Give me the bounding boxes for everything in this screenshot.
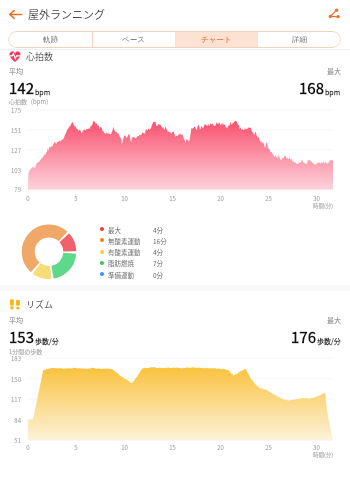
staticText: 歩数/分 xyxy=(35,336,59,346)
staticText: 30 xyxy=(313,194,320,203)
staticText: 153 xyxy=(9,326,34,348)
staticText: リズム xyxy=(26,298,54,311)
staticText: 30 xyxy=(313,443,320,452)
button[interactable]: Back xyxy=(4,3,26,25)
staticText: 0分 xyxy=(153,270,164,279)
staticText: 無酸素運動 xyxy=(108,236,141,245)
staticText: 151 xyxy=(11,126,21,135)
button[interactable]: ペース xyxy=(92,31,175,48)
staticText: 時間(分) xyxy=(313,451,334,459)
staticText: 10 xyxy=(121,443,128,452)
staticText: 176 xyxy=(291,326,316,348)
staticText: 16分 xyxy=(153,236,167,245)
staticText: 歩数/分 xyxy=(317,336,341,346)
staticText: 最大 xyxy=(108,225,121,234)
staticText: 20 xyxy=(217,443,224,452)
button[interactable]: 軌跡 xyxy=(8,31,92,48)
staticText: 詳細 xyxy=(292,35,307,44)
staticText: 平均 xyxy=(9,315,23,325)
button[interactable]: Share xyxy=(325,5,343,23)
staticText: チャート xyxy=(201,35,232,44)
staticText: 有酸素運動 xyxy=(108,247,141,256)
staticText: bpm xyxy=(325,87,341,97)
staticText: 時間(分) xyxy=(313,202,334,210)
staticText: 脂肪燃焼 xyxy=(108,258,134,267)
staticText: 0 xyxy=(26,443,30,452)
staticText: 5 xyxy=(74,194,78,203)
staticText: 117 xyxy=(11,395,21,404)
staticText: 最大 xyxy=(327,315,341,325)
staticText: 79 xyxy=(14,185,21,194)
staticText: 10 xyxy=(121,194,128,203)
staticText: 175 xyxy=(11,106,21,115)
staticText: 屋外ランニング xyxy=(28,6,105,22)
staticText: 15 xyxy=(169,443,176,452)
button[interactable]: チャート xyxy=(175,31,258,48)
staticText: 準備運動 xyxy=(108,270,134,279)
staticText: 軌跡 xyxy=(43,35,58,44)
staticText: 25 xyxy=(265,443,272,452)
staticText: 142 xyxy=(9,77,34,99)
staticText: 最大 xyxy=(327,66,341,76)
staticText: 1分間の歩数 xyxy=(9,347,43,356)
staticText: 20 xyxy=(217,194,224,203)
staticText: 25 xyxy=(265,194,272,203)
staticText: 150 xyxy=(11,375,21,384)
staticText: 7分 xyxy=(153,258,164,267)
staticText: 心拍数（bpm） xyxy=(9,97,52,106)
staticText: 4分 xyxy=(153,247,164,256)
staticText: 127 xyxy=(11,146,21,155)
staticText: 168 xyxy=(299,77,324,99)
staticText: 心拍数 xyxy=(26,50,54,63)
button[interactable]: 詳細 xyxy=(258,31,341,48)
staticText: 183 xyxy=(11,354,21,363)
staticText: 15 xyxy=(169,194,176,203)
staticText: 平均 xyxy=(9,66,23,76)
staticText: 51 xyxy=(14,436,21,445)
staticText: 0 xyxy=(26,194,30,203)
staticText: 84 xyxy=(14,416,21,425)
staticText: bpm xyxy=(35,87,51,97)
staticText: ペース xyxy=(122,35,145,44)
staticText: 103 xyxy=(11,166,21,175)
staticText: 5 xyxy=(74,443,78,452)
staticText: 4分 xyxy=(153,225,164,234)
